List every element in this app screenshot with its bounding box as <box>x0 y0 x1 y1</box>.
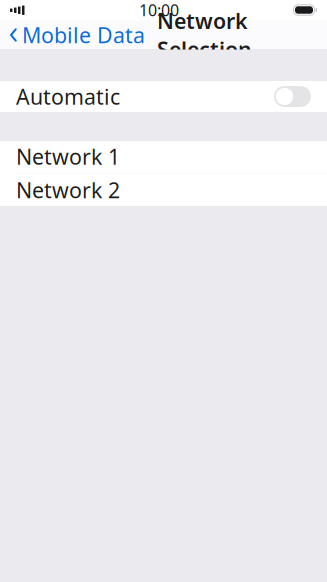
button[interactable]: Network 1 <box>0 140 327 173</box>
staticText: Network Selection <box>157 7 252 63</box>
button[interactable]: Network 2 <box>0 173 327 206</box>
staticText: Network 1 <box>16 142 120 171</box>
staticText: Network 2 <box>16 176 120 204</box>
button[interactable]: Automatic <box>274 86 327 107</box>
button[interactable]: Mobile Data <box>0 16 145 54</box>
staticText: 10:00 <box>139 0 179 21</box>
staticText: Automatic <box>16 82 120 111</box>
staticText: Mobile Data <box>22 21 145 49</box>
